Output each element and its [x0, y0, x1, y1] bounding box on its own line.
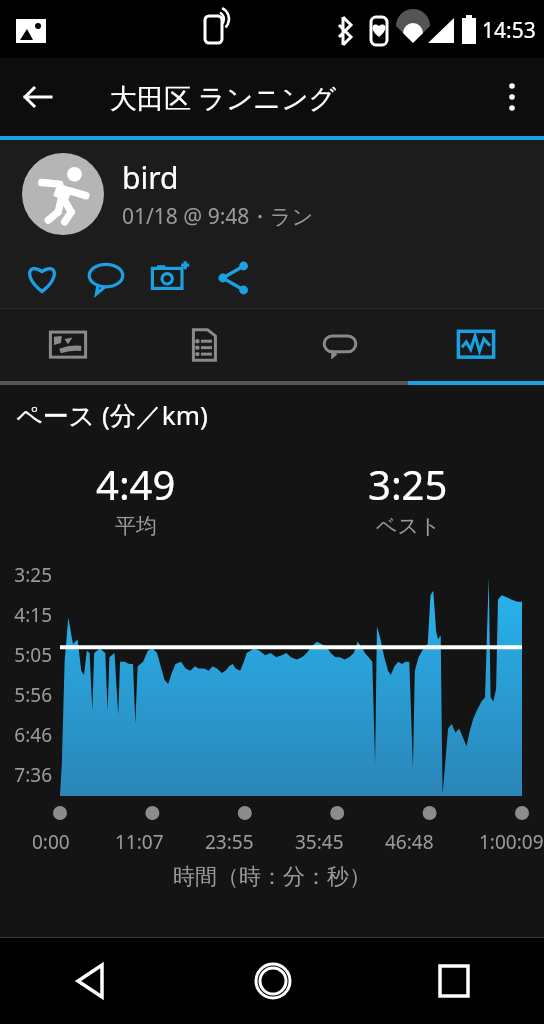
staticText: 時間（時：分：秒）: [0, 863, 544, 891]
staticText: 3:25: [368, 457, 448, 511]
staticText: 23:55: [205, 829, 254, 855]
button[interactable]: Like: [16, 252, 68, 304]
button[interactable]: 3:25: [272, 457, 544, 539]
staticText: 5:05: [0, 642, 52, 668]
button[interactable]: Back: [0, 938, 182, 1024]
staticText: 4:49: [96, 457, 176, 511]
button[interactable]: Home: [182, 938, 363, 1024]
staticText: 平均: [115, 513, 157, 539]
button[interactable]: Back: [12, 71, 64, 123]
button[interactable]: 4:49: [0, 457, 272, 539]
staticText: 14:53: [482, 16, 536, 45]
staticText: 11:07: [115, 829, 164, 855]
button[interactable]: Share: [208, 252, 260, 304]
staticText: 01/18 @ 9:48・ラン: [122, 202, 314, 231]
staticText: 7:36: [0, 762, 52, 788]
button[interactable]: Map tab: [0, 309, 136, 381]
staticText: 5:56: [0, 682, 52, 708]
staticText: 4:15: [0, 602, 52, 628]
button[interactable]: Details tab: [136, 309, 272, 381]
staticText: 35:45: [295, 829, 344, 855]
staticText: 0:00: [32, 829, 70, 855]
staticText: bird: [122, 157, 179, 198]
staticText: 6:46: [0, 722, 52, 748]
button[interactable]: Add photo: [144, 252, 196, 304]
staticText: ベスト: [376, 513, 441, 539]
button[interactable]: Comment: [80, 252, 132, 304]
staticText: 大田区 ランニング: [110, 79, 337, 116]
button[interactable]: Charts tab: [408, 309, 544, 381]
staticText: ペース (分／km): [16, 397, 208, 433]
staticText: 46:48: [385, 829, 434, 855]
staticText: 1:00:09: [479, 829, 544, 855]
button[interactable]: bird: [0, 140, 544, 248]
button[interactable]: Recents: [363, 938, 544, 1024]
staticText: 3:25: [0, 562, 52, 588]
button[interactable]: More options: [486, 71, 538, 123]
button[interactable]: Laps tab: [272, 309, 408, 381]
